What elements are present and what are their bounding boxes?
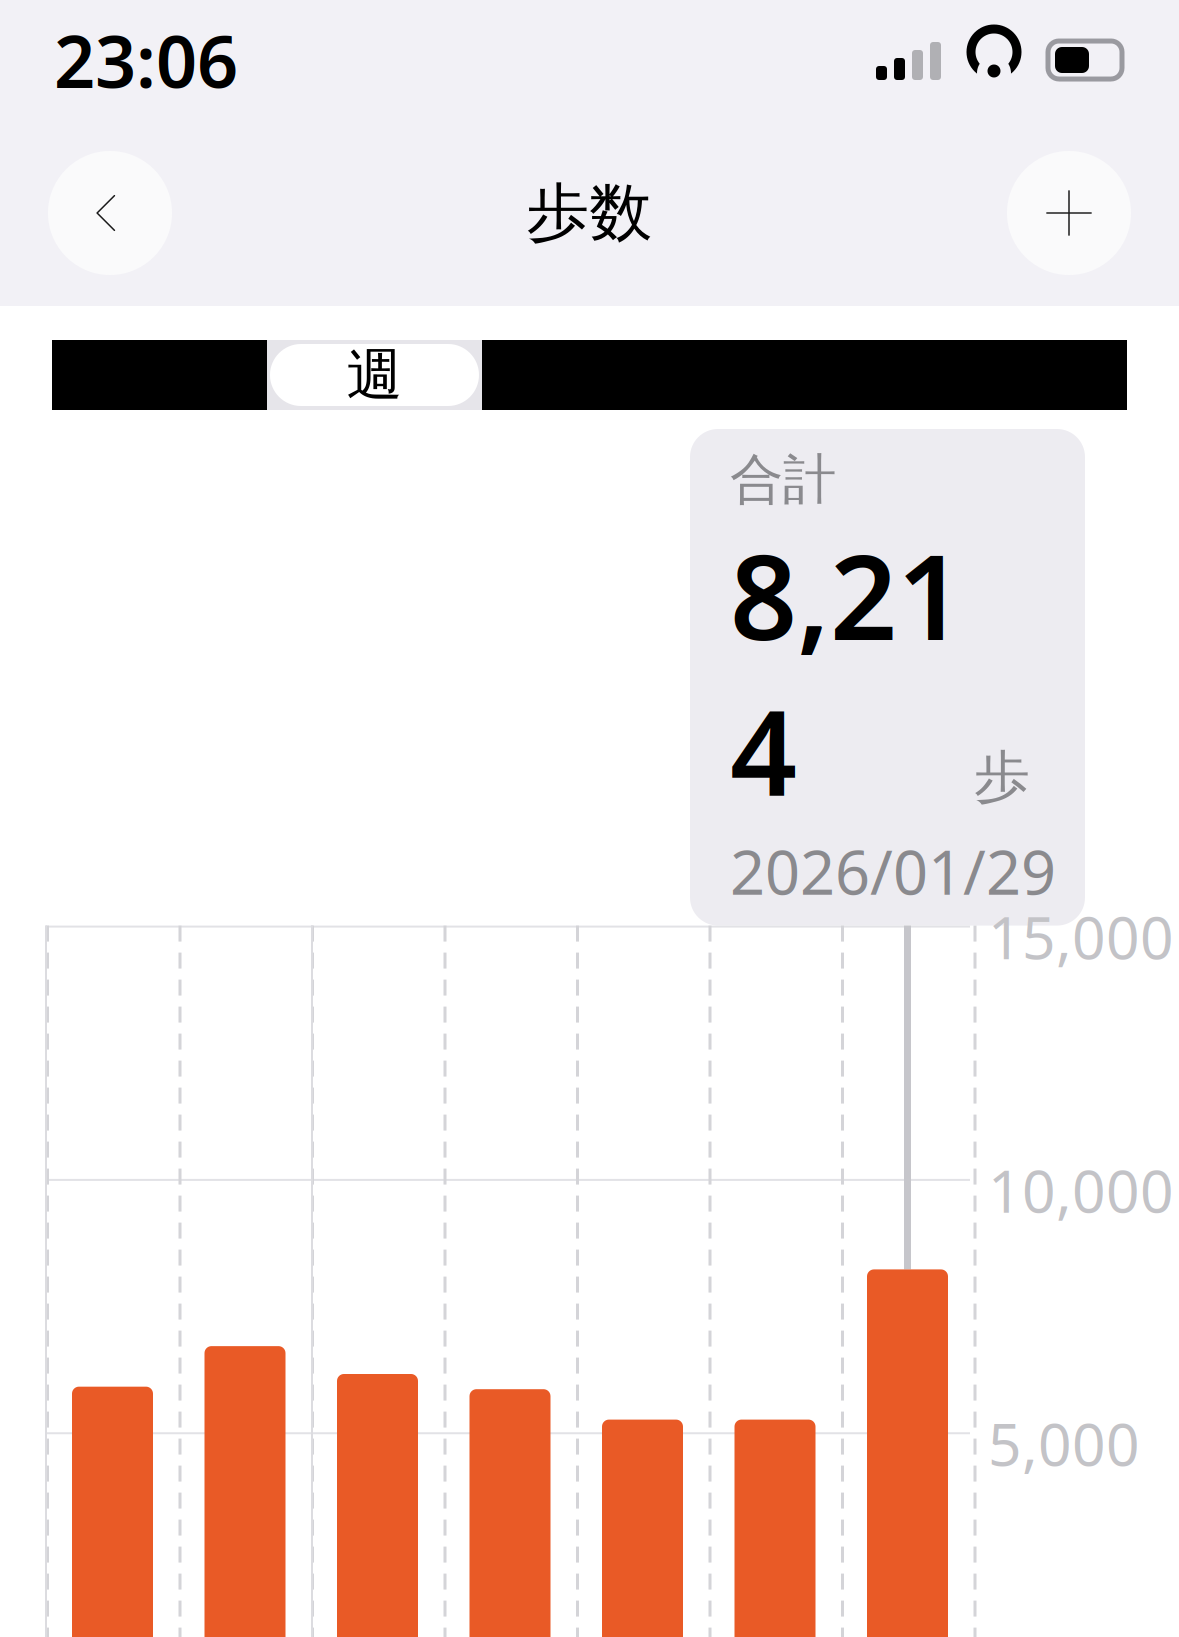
- staticText: 歩数: [526, 174, 652, 251]
- staticText: 10,000: [988, 1151, 1174, 1229]
- staticText: 15,000: [988, 898, 1174, 975]
- button[interactable]: 週: [267, 340, 482, 410]
- staticText: 歩: [974, 743, 1030, 811]
- staticText: 6か月: [732, 338, 877, 412]
- button[interactable]: 戻る: [48, 151, 172, 275]
- staticText: 週: [346, 341, 402, 409]
- staticText: 2026/01/29: [730, 830, 1056, 911]
- staticText: 5,000: [988, 1404, 1140, 1482]
- staticText: 23:06: [54, 12, 238, 108]
- staticText: 合計: [730, 447, 836, 512]
- button[interactable]: 追加: [1007, 151, 1131, 275]
- staticText: 8,214: [730, 516, 964, 828]
